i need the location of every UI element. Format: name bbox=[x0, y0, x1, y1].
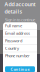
staticText: Country bbox=[5, 46, 19, 51]
staticText: Continue bbox=[10, 67, 29, 72]
staticText: Full name bbox=[5, 23, 22, 28]
staticText: Email address bbox=[5, 31, 30, 36]
staticText: Password bbox=[5, 38, 22, 43]
staticText: Sign in to continue bbox=[5, 17, 35, 22]
button[interactable]: Continue bbox=[5, 66, 35, 72]
staticText: Phone number bbox=[5, 53, 30, 58]
staticText: Add account details bbox=[4, 1, 35, 15]
